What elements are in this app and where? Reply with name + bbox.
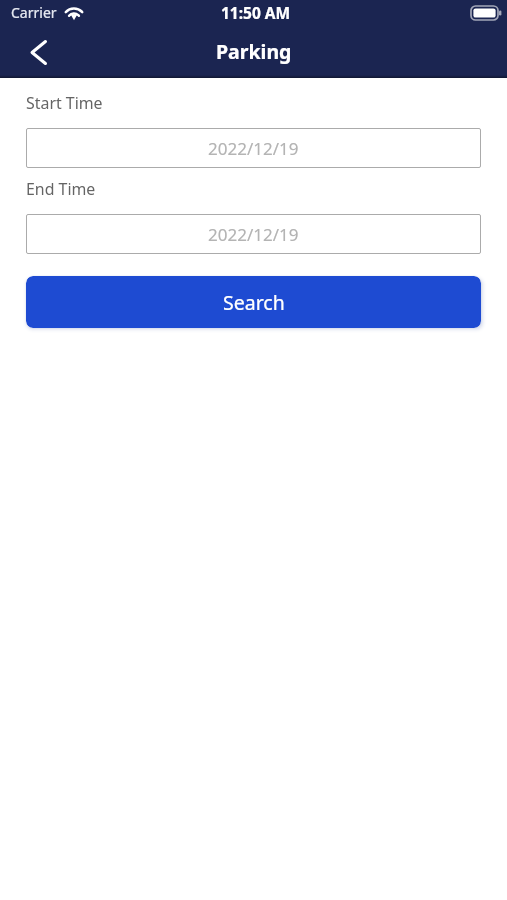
staticText: Start Time [26, 92, 103, 114]
staticText: 2022/12/19 [208, 137, 299, 160]
staticText: Carrier [11, 3, 57, 22]
staticText: 11:50 AM [221, 2, 291, 23]
staticText: Search [223, 289, 285, 316]
other: Battery full [471, 6, 502, 20]
staticText: End Time [26, 178, 96, 200]
staticText: 2022/12/19 [208, 223, 299, 246]
button[interactable]: Start time 2022/12/19 [26, 128, 481, 168]
button[interactable]: End time 2022/12/19 [26, 214, 481, 254]
button[interactable]: Search [26, 276, 481, 328]
staticText: Parking [216, 38, 292, 65]
button[interactable]: Back [14, 28, 62, 76]
other: Wi-Fi signal [63, 6, 85, 20]
